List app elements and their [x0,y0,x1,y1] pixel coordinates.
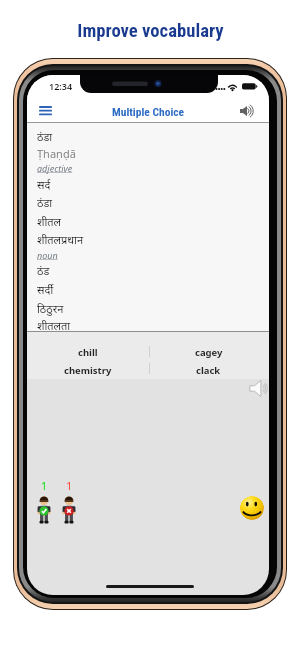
staticText: ठंड [37,263,50,278]
staticText: शीतलता [37,318,71,332]
staticText: शीतलप्रधान [37,232,84,247]
button[interactable]: Score 1 [62,478,76,524]
staticText: Multiple Choice [112,105,185,118]
staticText: noun [37,249,58,261]
staticText: cagey [195,346,223,359]
staticText: chill [78,346,98,359]
staticText: adjective [37,162,73,174]
staticText: 1 [41,478,48,493]
staticText: clack [196,364,221,377]
button[interactable]: Score 1 [37,478,51,524]
staticText: ठिठुरन [37,301,64,316]
staticText: शीतल [37,214,62,229]
button[interactable]: Play sound [246,377,268,399]
staticText: सर्द [37,177,51,192]
staticText: Ṭhaṇḍā [37,146,76,161]
button[interactable]: Sound [232,99,261,123]
staticText: ठंडा [37,195,53,210]
staticText: सर्दी [37,282,54,297]
button[interactable]: chill [70,345,106,360]
staticText: ठंडा [37,129,53,144]
button[interactable]: chemistry [56,363,120,378]
staticText: Improve vocabulary [77,20,224,42]
staticText: 12:34 [49,80,73,92]
button[interactable]: Mood [240,496,264,520]
button[interactable]: cagey [187,345,231,360]
button[interactable]: clack [188,363,229,378]
button[interactable]: Menu [31,99,60,123]
staticText: 1 [66,478,73,493]
staticText: chemistry [64,364,112,377]
